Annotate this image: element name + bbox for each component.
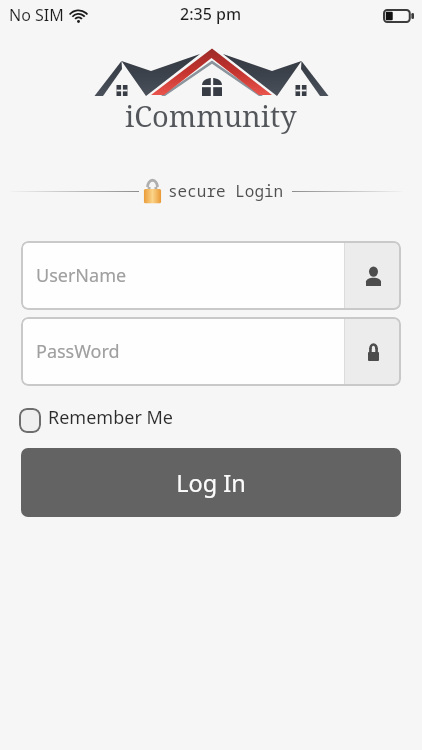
staticText: Remember Me (48, 405, 173, 430)
button[interactable]: User name (345, 241, 401, 310)
button[interactable]: UserName (21, 241, 401, 310)
button[interactable]: Log In (21, 448, 401, 517)
staticText: No SIM (9, 4, 64, 26)
button[interactable]: PassWord (21, 317, 401, 386)
staticText: secure Login (168, 180, 284, 202)
staticText: 2:35 pm (180, 3, 242, 25)
staticText: Log In (176, 467, 246, 499)
staticText: iCommunity (125, 96, 297, 135)
button[interactable]: Password (345, 317, 401, 386)
staticText: UserName (36, 263, 127, 288)
button[interactable]: Remember Me (19, 404, 173, 436)
staticText: PassWord (36, 339, 120, 364)
